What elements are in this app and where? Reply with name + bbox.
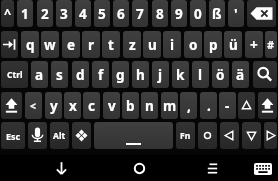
button[interactable]: 9 [171, 0, 187, 27]
staticText: z [129, 36, 136, 54]
button[interactable]: 4 [75, 0, 91, 27]
button[interactable] [247, 0, 276, 27]
staticText: 2 [41, 5, 49, 23]
staticText: 7 [136, 5, 144, 23]
button[interactable]: y [45, 92, 62, 119]
button[interactable] [198, 122, 217, 149]
button[interactable]: # [265, 31, 277, 58]
staticText: 9 [175, 5, 183, 23]
button[interactable]: ß [209, 0, 225, 27]
staticText: a [35, 66, 44, 84]
button[interactable]: Esc [1, 122, 25, 149]
button[interactable]: d [72, 61, 89, 88]
button[interactable]: 3 [56, 0, 72, 27]
button[interactable] [28, 122, 47, 149]
button[interactable]: p [204, 31, 222, 58]
staticText: e [67, 36, 76, 54]
staticText: b [126, 97, 135, 115]
button[interactable] [242, 122, 261, 149]
staticText: Esc [6, 130, 21, 142]
button[interactable]: 1 [17, 0, 33, 27]
button[interactable]: w [41, 31, 59, 58]
button[interactable]: f [92, 61, 109, 88]
button[interactable] [250, 156, 276, 181]
staticText: Ctrl [7, 69, 23, 81]
button[interactable] [72, 122, 91, 149]
button[interactable] [258, 92, 277, 119]
button[interactable]: ' [228, 0, 244, 27]
button[interactable]: x [64, 92, 81, 119]
button[interactable] [94, 122, 173, 149]
button[interactable]: Alt [50, 122, 69, 149]
staticText: p [209, 36, 218, 54]
staticText: Fn [180, 130, 191, 142]
staticText: 3 [60, 5, 68, 23]
staticText: ü [229, 36, 238, 54]
button[interactable]: h [132, 61, 149, 88]
button[interactable]: i [163, 31, 181, 58]
button[interactable]: j [152, 61, 169, 88]
staticText: c [88, 97, 95, 115]
staticText: s [56, 66, 63, 84]
staticText: ö [216, 66, 225, 84]
button[interactable]: u [143, 31, 161, 58]
staticText: w [44, 36, 56, 54]
staticText: y [50, 97, 58, 115]
button[interactable]: c [83, 92, 100, 119]
button[interactable] [48, 156, 75, 181]
button[interactable]: - [219, 92, 236, 119]
button[interactable]: e [62, 31, 80, 58]
button[interactable]: o [184, 31, 202, 58]
button[interactable]: t [102, 31, 120, 58]
staticText: < [30, 99, 37, 113]
button[interactable]: 0 [190, 0, 206, 27]
button[interactable]: ö [212, 61, 229, 88]
button[interactable] [1, 31, 18, 58]
button[interactable]: < [25, 92, 42, 119]
button[interactable]: k [172, 61, 189, 88]
staticText: ^ [4, 5, 12, 22]
button[interactable] [126, 156, 153, 181]
staticText: r [88, 36, 95, 54]
button[interactable]: r [82, 31, 100, 58]
button[interactable]: 8 [152, 0, 168, 27]
button[interactable]: z [123, 31, 141, 58]
button[interactable]: ä [232, 61, 249, 88]
button[interactable]: Ctrl [1, 61, 28, 88]
button[interactable]: b [122, 92, 139, 119]
staticText: o [189, 36, 198, 54]
staticText: i [170, 36, 175, 54]
staticText: l [198, 66, 203, 84]
button[interactable]: 6 [113, 0, 129, 27]
button[interactable] [253, 61, 277, 88]
button[interactable]: , [180, 92, 197, 119]
staticText: v [108, 97, 116, 115]
button[interactable]: g [112, 61, 129, 88]
button[interactable] [264, 122, 277, 149]
button[interactable]: a [31, 61, 48, 88]
button[interactable]: 7 [132, 0, 148, 27]
button[interactable]: v [103, 92, 120, 119]
button[interactable] [220, 122, 239, 149]
staticText: x [69, 97, 77, 115]
button[interactable] [238, 92, 255, 119]
staticText: h [136, 66, 145, 84]
button[interactable]: ü [224, 31, 242, 58]
button[interactable] [200, 156, 225, 181]
button[interactable]: s [51, 61, 68, 88]
button[interactable]: . [200, 92, 217, 119]
button[interactable]: 2 [37, 0, 53, 27]
staticText: k [176, 66, 185, 84]
button[interactable]: + [245, 31, 263, 58]
button[interactable]: n [141, 92, 158, 119]
button[interactable]: q [21, 31, 39, 58]
button[interactable]: l [192, 61, 209, 88]
button[interactable]: m [161, 92, 178, 119]
staticText: f [98, 66, 104, 84]
button[interactable]: 5 [94, 0, 110, 27]
button[interactable]: ^ [1, 0, 14, 27]
staticText: d [76, 66, 85, 84]
staticText: ' [234, 5, 238, 23]
button[interactable] [1, 92, 22, 119]
button[interactable]: Fn [176, 122, 195, 149]
